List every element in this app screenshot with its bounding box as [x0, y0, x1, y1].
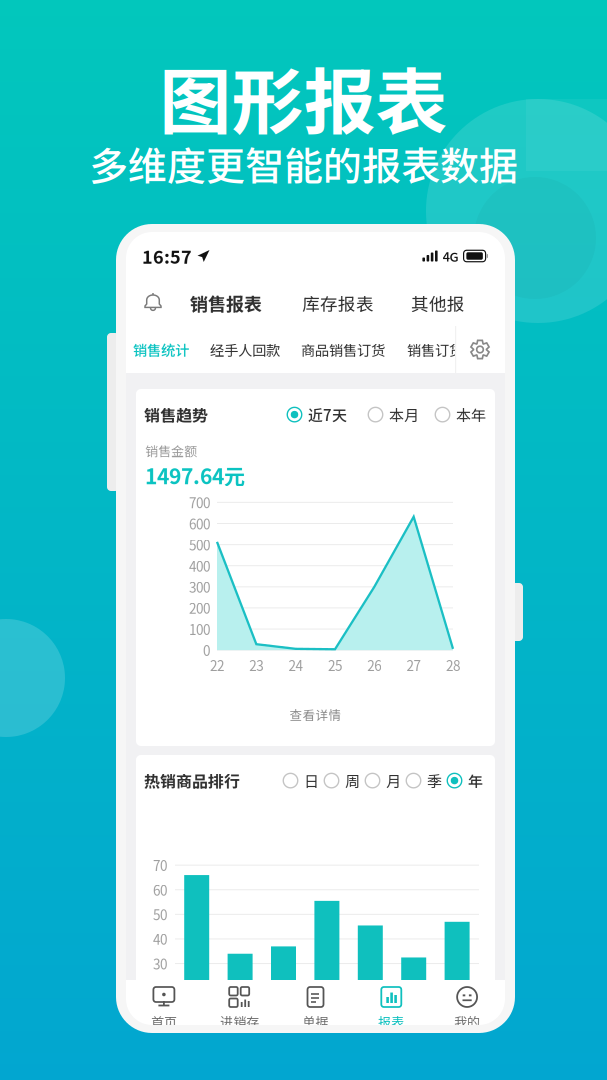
button[interactable]: Notifications — [134, 283, 174, 323]
staticText: 1497.64元 — [145, 460, 245, 490]
staticText: 销售金额 — [145, 441, 197, 460]
staticText: 30 — [153, 954, 167, 973]
staticText: 50 — [153, 905, 167, 924]
staticText: 25 — [328, 655, 342, 675]
staticText: 200 — [189, 598, 210, 618]
staticText: 图形报表 — [159, 45, 447, 149]
button[interactable]: 销售报表 — [190, 290, 262, 316]
staticText: 本月 — [389, 404, 419, 425]
staticText: 24 — [289, 655, 303, 675]
staticText: 商品销售订货 — [301, 339, 385, 360]
button[interactable]: 销售统计 — [133, 339, 189, 360]
staticText: 40 — [153, 929, 167, 949]
staticText: 经手人回款 — [210, 339, 280, 360]
staticText: 500 — [189, 535, 210, 554]
staticText: 报表 — [378, 1012, 404, 1031]
staticText: 我的 — [454, 1012, 480, 1031]
staticText: 28 — [446, 655, 460, 675]
staticText: 销售趋势 — [144, 403, 208, 426]
button[interactable]: 查看详情 — [265, 699, 365, 729]
staticText: 27 — [407, 655, 421, 675]
staticText: 月 — [386, 770, 401, 791]
staticText: 700 — [189, 493, 210, 512]
staticText: 查看详情 — [289, 705, 341, 723]
staticText: 22 — [210, 655, 224, 675]
button[interactable]: 销售订货 — [407, 339, 463, 360]
staticText: 26 — [367, 655, 381, 675]
staticText: 0 — [203, 640, 210, 660]
button[interactable]: 近7天 — [287, 404, 347, 425]
button[interactable]: 本月 — [368, 404, 419, 425]
button[interactable]: 首页 — [126, 980, 202, 1033]
staticText: 600 — [189, 514, 210, 533]
staticText: 60 — [153, 880, 167, 899]
staticText: 300 — [189, 577, 210, 597]
button[interactable]: Settings — [455, 326, 505, 373]
staticText: 本年 — [456, 404, 486, 425]
staticText: 其他报 — [411, 290, 465, 316]
button[interactable]: 季 — [406, 770, 442, 791]
staticText: 近7天 — [308, 404, 347, 425]
staticText: 100 — [189, 619, 210, 639]
button[interactable]: 日 — [283, 770, 319, 791]
button[interactable]: 本年 — [435, 404, 486, 425]
staticText: 热销商品排行 — [144, 769, 240, 792]
staticText: 日 — [304, 770, 319, 791]
staticText: 23 — [249, 655, 263, 675]
button[interactable]: 商品销售订货 — [301, 339, 385, 360]
button[interactable]: 其他报 — [411, 290, 465, 316]
button[interactable]: 经手人回款 — [210, 339, 280, 360]
button[interactable]: 报表 — [353, 980, 429, 1033]
staticText: 400 — [189, 556, 210, 575]
staticText: 年 — [468, 770, 483, 791]
button[interactable]: 进销存 — [202, 980, 278, 1033]
button[interactable]: 年 — [447, 770, 483, 791]
button[interactable]: 单据 — [278, 980, 353, 1033]
staticText: 周 — [345, 770, 360, 791]
button[interactable]: 我的 — [429, 980, 505, 1033]
staticText: 销售统计 — [133, 339, 189, 360]
staticText: 多维度更智能的报表数据 — [89, 135, 518, 192]
staticText: 首页 — [151, 1012, 177, 1031]
staticText: 库存报表 — [302, 290, 374, 316]
staticText: 销售报表 — [190, 290, 262, 316]
staticText: 16:57 — [142, 243, 192, 269]
staticText: 销售订货 — [407, 339, 463, 360]
staticText: 季 — [427, 770, 442, 791]
button[interactable]: 周 — [324, 770, 360, 791]
button[interactable]: 月 — [365, 770, 401, 791]
staticText: 70 — [153, 855, 167, 875]
staticText: 进销存 — [220, 1012, 259, 1031]
staticText: 单据 — [302, 1012, 328, 1031]
button[interactable]: 库存报表 — [302, 290, 374, 316]
staticText: 4G — [443, 247, 459, 265]
